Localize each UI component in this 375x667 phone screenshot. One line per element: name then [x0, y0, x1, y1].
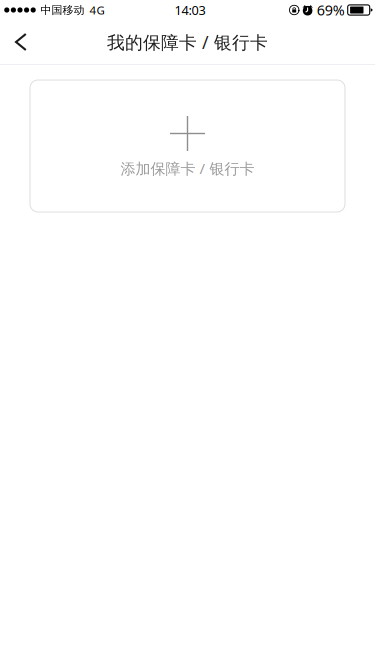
staticText: 中国移动	[40, 3, 84, 17]
button[interactable]: 添加保障卡 / 银行卡	[30, 80, 345, 212]
staticText: 4G	[89, 2, 104, 18]
staticText: 69%	[317, 0, 345, 20]
staticText: 我的保障卡 / 银行卡	[107, 30, 268, 54]
staticText: 添加保障卡 / 银行卡	[120, 158, 254, 178]
staticText: 14:03	[174, 1, 205, 19]
button[interactable]: Back	[0, 20, 42, 64]
